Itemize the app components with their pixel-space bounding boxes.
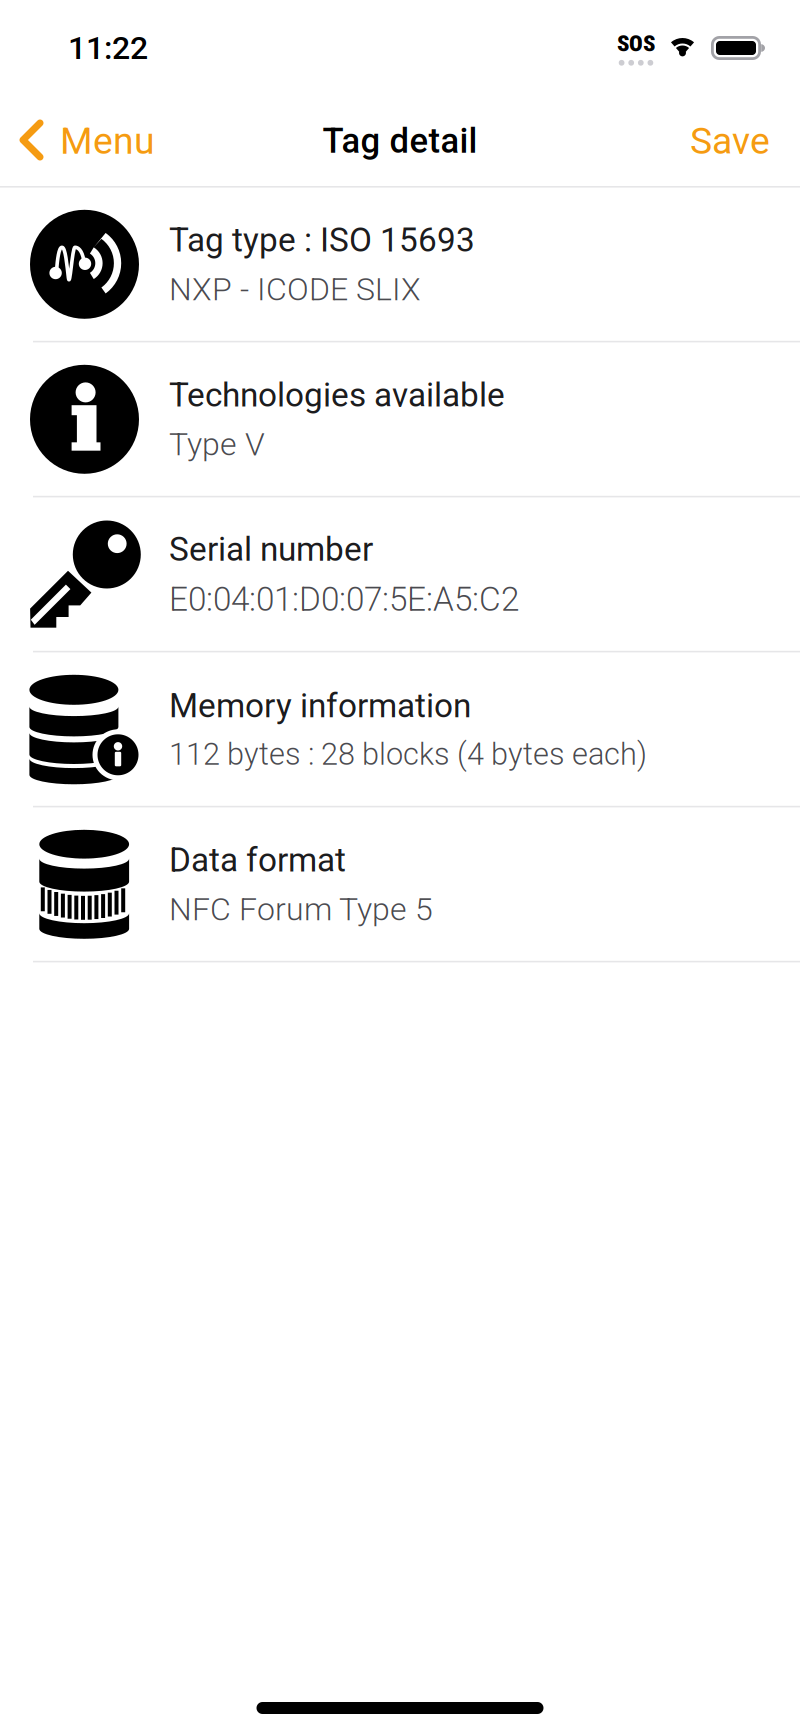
button[interactable]: Save (676, 107, 800, 175)
staticText: NFC Forum Type 5 (169, 891, 433, 928)
staticText: Type V (169, 426, 265, 463)
staticText: 11:22 (68, 29, 148, 67)
staticText: Memory information (169, 686, 471, 725)
staticText: Tag detail (322, 121, 477, 161)
button[interactable]: Serial number (0, 498, 800, 652)
staticText: 112 bytes : 28 blocks (4 bytes each) (169, 736, 647, 772)
staticText: Tag type : ISO 15693 (169, 220, 475, 260)
staticText: Serial number (169, 530, 373, 569)
staticText: Save (690, 119, 770, 163)
staticText: Data format (169, 840, 346, 880)
staticText: SOS (617, 30, 655, 57)
staticText: NXP - ICODE SLIX (169, 271, 421, 308)
staticText: Menu (60, 119, 155, 163)
staticText: Technologies available (169, 375, 505, 415)
button[interactable]: Menu (0, 107, 165, 175)
staticText: E0:04:01:D0:07:5E:A5:C2 (169, 580, 519, 619)
button[interactable]: Tag type : ISO 15693 (0, 188, 800, 342)
button[interactable]: Data format (0, 808, 800, 962)
button[interactable]: Technologies available (0, 343, 800, 497)
button[interactable]: Memory information (0, 653, 800, 807)
